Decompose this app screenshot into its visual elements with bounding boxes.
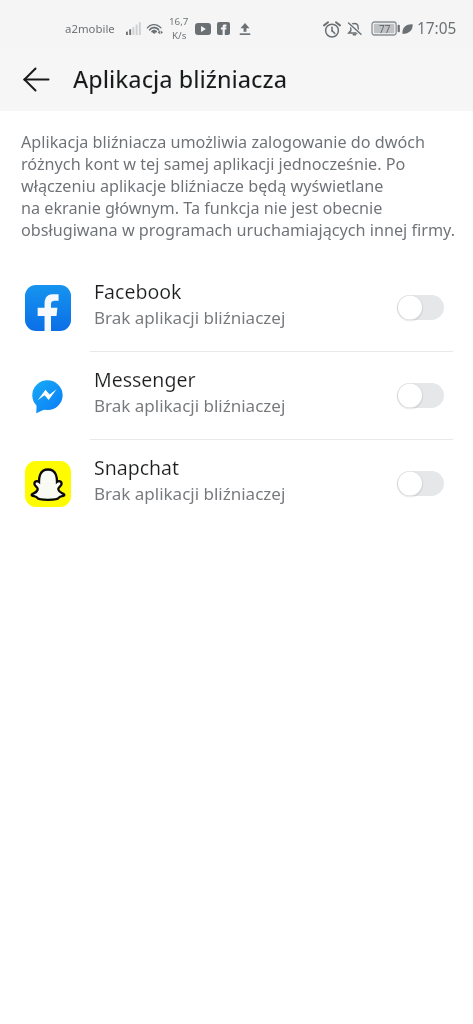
- button[interactable]: Facebook: [0, 264, 473, 351]
- button[interactable]: Toggle: [397, 383, 444, 408]
- staticText: 16,7: [169, 15, 189, 28]
- staticText: Snapchat: [94, 454, 180, 481]
- button[interactable]: Snapchat: [0, 440, 473, 527]
- button[interactable]: Toggle: [397, 295, 444, 320]
- staticText: Facebook: [94, 278, 182, 305]
- button[interactable]: Messenger: [0, 352, 473, 439]
- staticText: Brak aplikacji bliźniaczej: [94, 482, 286, 505]
- staticText: Messenger: [94, 366, 196, 393]
- staticText: a2mobile: [65, 21, 115, 37]
- staticText: 77: [379, 22, 391, 35]
- staticText: Aplikacja bliźniacza umożliwia zalogowan…: [21, 131, 455, 241]
- staticText: 17:05: [417, 18, 457, 39]
- button[interactable]: Back: [0, 47, 72, 111]
- button[interactable]: Toggle: [397, 471, 444, 496]
- staticText: Brak aplikacji bliźniaczej: [94, 394, 286, 417]
- staticText: Aplikacja bliźniacza: [73, 63, 287, 95]
- staticText: Brak aplikacji bliźniaczej: [94, 306, 286, 329]
- staticText: K/s: [172, 29, 187, 42]
